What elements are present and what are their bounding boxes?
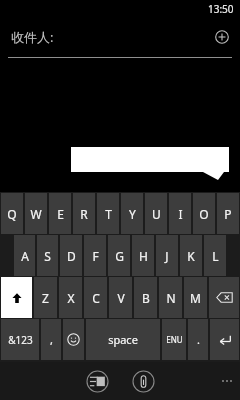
staticText: V [117,290,125,306]
staticText: W [30,206,42,222]
button[interactable]: space [86,319,160,360]
button[interactable]: . [188,319,208,360]
button[interactable]: M [184,277,207,318]
button[interactable]: B [134,277,157,318]
staticText: I [178,206,183,222]
staticText: P [224,206,232,222]
button[interactable]: Enter [210,319,239,360]
button[interactable]: Attach [130,368,156,394]
button[interactable]: ENU [162,319,186,360]
button[interactable]: Send message [84,368,110,394]
staticText: M [190,290,201,306]
staticText: . [197,332,200,347]
button[interactable]: Q [1,193,23,234]
button[interactable]: More options [221,380,233,382]
staticText: 13:50 [208,2,234,16]
staticText: S [44,248,51,264]
button[interactable]: J [156,235,178,276]
button[interactable]: 收件人: [0,18,240,58]
button[interactable]: Z [34,277,57,318]
button[interactable]: G [108,235,130,276]
staticText: 收件人: [11,28,54,46]
button[interactable]: S [37,235,58,276]
staticText: K [187,248,195,264]
button[interactable]: Backspace [209,277,239,318]
staticText: L [212,248,219,264]
staticText: D [67,248,76,264]
button[interactable]: &123 [1,319,39,360]
button[interactable]: O [193,193,215,234]
button[interactable]: C [84,277,107,318]
button[interactable]: U [145,193,167,234]
button[interactable]: T [97,193,119,234]
staticText: C [92,290,100,306]
button[interactable]: Emoji [63,319,84,360]
button[interactable]: I [169,193,191,234]
staticText: H [139,248,148,264]
button[interactable]: D [60,235,82,276]
button[interactable]: R [73,193,95,234]
staticText: Z [42,290,49,306]
button[interactable]: P [217,193,239,234]
staticText: Y [129,206,136,222]
staticText: E [57,206,64,222]
button[interactable]: , [41,319,61,360]
staticText: A [21,248,29,264]
staticText: B [142,290,150,306]
button[interactable]: H [132,235,154,276]
staticText: F [92,248,99,264]
button[interactable]: K [180,235,202,276]
button[interactable]: V [109,277,132,318]
staticText: , [50,332,53,347]
staticText: T [105,206,112,222]
staticText: N [166,290,176,306]
button[interactable]: Add recipient [212,27,232,47]
staticText: X [67,290,75,306]
button[interactable]: E [49,193,71,234]
button[interactable]: F [84,235,106,276]
button[interactable]: Y [121,193,143,234]
staticText: U [152,206,161,222]
staticText: O [199,206,209,222]
button[interactable]: N [159,277,182,318]
staticText: Q [7,206,17,222]
button[interactable]: W [25,193,47,234]
button[interactable] [71,147,229,180]
staticText: space [108,332,138,347]
staticText: J [165,248,169,264]
staticText: R [80,206,88,222]
button[interactable]: X [59,277,82,318]
staticText: G [115,248,124,264]
button[interactable]: A [14,235,35,276]
button[interactable]: L [204,235,226,276]
button[interactable]: Shift [1,277,32,318]
staticText: ENU [166,334,183,345]
staticText: &123 [8,333,33,347]
